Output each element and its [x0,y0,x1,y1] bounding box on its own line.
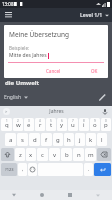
staticText: Mitte des Jahres [9,52,47,59]
button[interactable]: English [4,94,28,101]
staticText: q [5,121,9,129]
staticText: h [67,136,71,144]
button[interactable]: k [86,133,96,146]
staticText: m [88,151,94,159]
staticText: s [21,136,24,144]
staticText: r [39,121,42,129]
button[interactable]: 0 [101,118,111,131]
button[interactable]: Menu [3,10,14,21]
button[interactable]: f [41,133,52,146]
staticText: OK [91,68,98,74]
button[interactable]: Emoji [28,163,37,176]
staticText: 1 [6,119,8,123]
staticText: n [77,151,81,159]
staticText: , [22,166,24,173]
button[interactable]: d [29,133,40,146]
button[interactable]: 1 [1,118,12,131]
staticText: Level 1/1 [80,12,103,19]
staticText: . [88,166,90,173]
button[interactable]: Voice input [101,108,109,116]
button[interactable]: a [5,133,16,146]
button[interactable]: 8 [79,118,89,131]
button[interactable]: h [64,133,74,146]
button[interactable]: Backspace [97,148,111,161]
staticText: u [71,121,75,129]
staticText: a [9,136,13,144]
staticText: 7 [72,119,74,123]
staticText: 5 [50,119,52,123]
staticText: t [50,121,53,129]
staticText: > [5,109,8,114]
button[interactable]: g [53,133,63,146]
button[interactable]: Hide keyboard [84,190,112,200]
staticText: 13:08 [2,1,14,7]
button[interactable]: . [84,163,93,176]
staticText: e [27,121,31,129]
button[interactable]: ?123 [1,163,17,176]
button[interactable]: Enter [94,163,111,176]
staticText: k [89,136,93,144]
button[interactable]: Shift [1,148,14,161]
staticText: d [33,136,37,144]
staticText: 0 [105,119,107,123]
staticText: Jahres [49,108,64,115]
button[interactable]: Edit [96,91,108,103]
button[interactable]: x [26,148,36,161]
button[interactable]: 4 [35,118,45,131]
staticText: l [101,136,103,144]
button[interactable]: OK [87,65,102,77]
staticText: 4 [39,119,41,123]
staticText: 2 [17,119,19,123]
staticText: die Umwelt [5,79,40,87]
staticText: v [53,151,57,159]
button[interactable]: Recents [56,190,84,200]
staticText: 3 [28,119,30,123]
staticText: j [79,136,81,144]
button[interactable]: 9 [90,118,100,131]
staticText: z [19,151,22,159]
staticText: p [104,121,108,129]
button[interactable]: , [18,163,27,176]
staticText: 6 [61,119,63,123]
button[interactable]: 5 [46,118,56,131]
staticText: g [56,136,60,144]
button[interactable]: z [15,148,25,161]
staticText: w [16,121,21,129]
staticText: 8 [83,119,85,123]
button[interactable]: Expand [3,108,10,115]
button[interactable]: 6 [57,118,67,131]
staticText: i [83,121,85,129]
button[interactable]: Level 1/1 [80,12,109,19]
staticText: b [65,151,69,159]
button[interactable]: Back [0,190,28,200]
button[interactable]: c [37,148,48,161]
staticText: ?123 [5,167,14,172]
staticText: Beispiele: [9,45,30,51]
button[interactable]: l [97,133,107,146]
staticText: c [41,151,44,159]
staticText: x [29,151,33,159]
button[interactable]: m [85,148,96,161]
staticText: o [93,121,97,129]
button[interactable]: Home [28,190,56,200]
staticText: Cancel [46,68,61,74]
button[interactable]: 2 [13,118,23,131]
button[interactable]: Cancel [42,65,65,77]
button[interactable]: 3 [24,118,34,131]
button[interactable]: j [75,133,85,146]
staticText: f [45,136,48,144]
staticText: Meine Übersetzung [9,30,69,39]
button[interactable]: s [17,133,28,146]
staticText: y [60,121,64,129]
button[interactable]: 7 [68,118,78,131]
button[interactable]: b [61,148,72,161]
staticText: 9 [94,119,96,123]
button[interactable]: n [73,148,84,161]
button[interactable]: v [49,148,60,161]
staticText: English [4,94,22,101]
